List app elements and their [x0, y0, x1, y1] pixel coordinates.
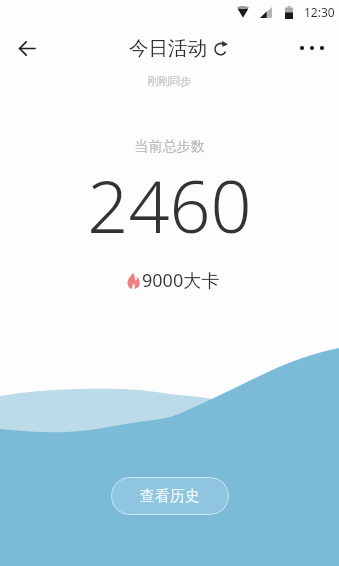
staticText: 今日活动 — [129, 36, 207, 61]
staticText: 查看历史 — [140, 487, 200, 506]
button[interactable]: More options — [292, 28, 332, 68]
staticText: 2460 — [0, 156, 339, 254]
staticText: 9000大卡 — [142, 268, 220, 293]
button[interactable]: Refresh — [215, 42, 227, 55]
staticText: 12:30 — [304, 4, 335, 20]
staticText: 当前总步数 — [0, 138, 339, 156]
button[interactable]: Back — [7, 28, 47, 68]
staticText: 刚刚同步 — [0, 74, 339, 88]
button[interactable]: 查看历史 — [111, 477, 229, 515]
